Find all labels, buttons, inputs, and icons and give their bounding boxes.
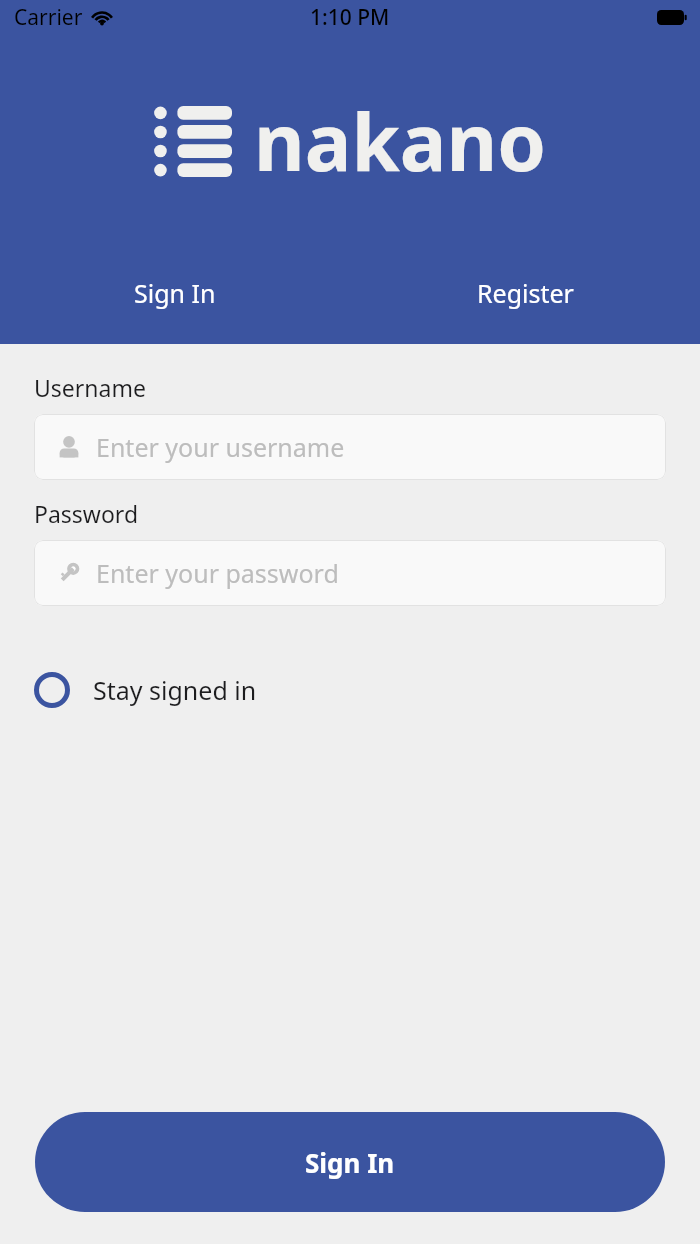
staticText: 1:10 PM bbox=[310, 3, 390, 32]
staticText: Username bbox=[34, 372, 146, 403]
staticText: Carrier bbox=[14, 3, 83, 32]
button[interactable]: Sign In bbox=[35, 1112, 665, 1212]
button[interactable]: Sign In bbox=[0, 270, 350, 316]
staticText: Sign In bbox=[134, 276, 216, 310]
staticText: nakano bbox=[254, 88, 546, 194]
staticText: Password bbox=[34, 498, 139, 529]
button[interactable]: Register bbox=[350, 270, 700, 316]
button[interactable]: Enter your username bbox=[34, 414, 666, 480]
staticText: Register bbox=[477, 276, 574, 310]
staticText: Enter your password bbox=[96, 556, 339, 590]
staticText: Stay signed in bbox=[93, 673, 257, 707]
button[interactable]: Enter your password bbox=[34, 540, 666, 606]
staticText: Sign In bbox=[305, 1145, 395, 1180]
staticText: Enter your username bbox=[96, 430, 345, 464]
button[interactable]: Stay signed in bbox=[34, 660, 666, 720]
